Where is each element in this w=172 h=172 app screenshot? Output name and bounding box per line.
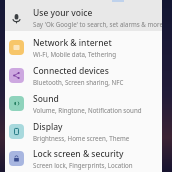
other: Use your voice — [11, 13, 22, 24]
staticText: Network & internet — [33, 37, 112, 49]
staticText: Volume, Ringtone, Notification sound — [33, 106, 142, 114]
staticText: Lock screen & security — [33, 148, 124, 160]
staticText: Bluetooth, Screen sharing, NFC — [33, 78, 124, 86]
staticText: Brightness, Home screen, Theme — [33, 134, 130, 142]
staticText: Use your voice — [33, 7, 93, 19]
staticText: Wi-Fi, Mobile data, Tethering — [33, 50, 116, 58]
button[interactable]: Connected devices — [0, 61, 172, 89]
button[interactable]: Network & internet — [0, 33, 172, 61]
staticText: Connected devices — [33, 65, 109, 77]
staticText: Sound — [33, 93, 59, 105]
button[interactable]: Use your voice — [0, 0, 172, 31]
staticText: Say 'Ok Google' to search, set alarms & … — [33, 20, 163, 28]
button[interactable]: Display — [0, 117, 172, 145]
staticText: Display — [33, 121, 63, 133]
button[interactable]: Sound — [0, 89, 172, 117]
staticText: Screen lock, Fingerprints, Location — [33, 161, 133, 169]
button[interactable]: Lock screen & security — [0, 145, 172, 172]
